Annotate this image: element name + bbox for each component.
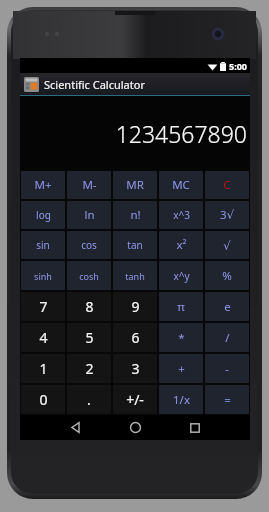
button[interactable]: * <box>159 323 203 352</box>
staticText: +/- <box>126 390 144 409</box>
button[interactable]: 0 <box>21 385 65 414</box>
staticText: 3√ <box>220 207 234 223</box>
button[interactable]: 5 <box>67 323 111 352</box>
staticText: 1234567890 <box>115 118 247 149</box>
button[interactable]: 4 <box>21 323 65 352</box>
button[interactable]: C <box>205 171 249 199</box>
staticText: 3 <box>131 359 140 378</box>
button[interactable]: MR <box>113 171 157 199</box>
staticText: MR <box>126 177 144 193</box>
staticText: π <box>177 299 185 315</box>
staticText: . <box>87 390 91 409</box>
button[interactable]: ln <box>67 201 111 229</box>
staticText: Scientific Calculator <box>44 77 145 92</box>
staticText: 0 <box>39 390 48 409</box>
staticText: cos <box>81 238 97 252</box>
staticText: = <box>224 392 231 408</box>
staticText: tan <box>127 238 143 252</box>
button[interactable]: 6 <box>113 323 157 352</box>
button[interactable]: √ <box>205 231 249 259</box>
staticText: 8 <box>85 297 94 316</box>
button[interactable]: = <box>205 385 249 414</box>
staticText: log <box>36 208 51 222</box>
button[interactable]: 7 <box>21 292 65 321</box>
button[interactable]: 2 <box>67 354 111 383</box>
button[interactable]: sin <box>21 231 65 259</box>
staticText: 2 <box>85 359 94 378</box>
button[interactable]: x^y <box>159 261 203 290</box>
button[interactable]: x² <box>159 231 203 259</box>
staticText: MC <box>172 177 190 193</box>
staticText: ln <box>84 207 95 223</box>
button[interactable]: tanh <box>113 261 157 290</box>
staticText: M- <box>82 177 97 193</box>
staticText: 4 <box>39 328 48 347</box>
staticText: e <box>224 299 231 315</box>
button[interactable]: 9 <box>113 292 157 321</box>
staticText: - <box>225 361 229 377</box>
button[interactable]: MC <box>159 171 203 199</box>
button[interactable]: e <box>205 292 249 321</box>
staticText: C <box>223 177 231 193</box>
button[interactable]: π <box>159 292 203 321</box>
button[interactable]: Recent apps <box>173 415 217 440</box>
staticText: n! <box>130 207 141 223</box>
staticText: 1/x <box>173 392 190 408</box>
staticText: sin <box>36 238 50 252</box>
staticText: / <box>225 330 230 346</box>
staticText: √ <box>223 239 231 252</box>
button[interactable]: +/- <box>113 385 157 414</box>
staticText: % <box>222 268 232 284</box>
button[interactable]: cos <box>67 231 111 259</box>
button[interactable]: n! <box>113 201 157 229</box>
staticText: 7 <box>39 297 48 316</box>
button[interactable]: 1/x <box>159 385 203 414</box>
staticText: tanh <box>125 270 145 282</box>
staticText: 1 <box>39 359 48 378</box>
staticText: cosh <box>79 270 99 282</box>
button[interactable]: % <box>205 261 249 290</box>
button[interactable]: cosh <box>67 261 111 290</box>
button[interactable]: Back <box>53 415 97 440</box>
button[interactable]: - <box>205 354 249 383</box>
staticText: M+ <box>34 177 52 193</box>
staticText: x^y <box>173 269 190 283</box>
staticText: + <box>178 361 185 377</box>
staticText: sinh <box>34 270 52 282</box>
staticText: x^3 <box>173 208 190 222</box>
button[interactable]: 1 <box>21 354 65 383</box>
button[interactable]: M- <box>67 171 111 199</box>
button[interactable]: / <box>205 323 249 352</box>
button[interactable]: . <box>67 385 111 414</box>
button[interactable]: 8 <box>67 292 111 321</box>
button[interactable]: tan <box>113 231 157 259</box>
button[interactable]: sinh <box>21 261 65 290</box>
button[interactable]: log <box>21 201 65 229</box>
button[interactable]: 3√ <box>205 201 249 229</box>
button[interactable]: x^3 <box>159 201 203 229</box>
staticText: 9 <box>131 297 140 316</box>
staticText: x² <box>176 237 187 253</box>
staticText: 5 <box>85 328 94 347</box>
staticText: 5:00 <box>229 60 247 72</box>
staticText: 6 <box>131 328 140 347</box>
staticText: * <box>178 330 185 346</box>
button[interactable]: Home <box>113 415 157 440</box>
button[interactable]: 3 <box>113 354 157 383</box>
button[interactable]: M+ <box>21 171 65 199</box>
button[interactable]: + <box>159 354 203 383</box>
